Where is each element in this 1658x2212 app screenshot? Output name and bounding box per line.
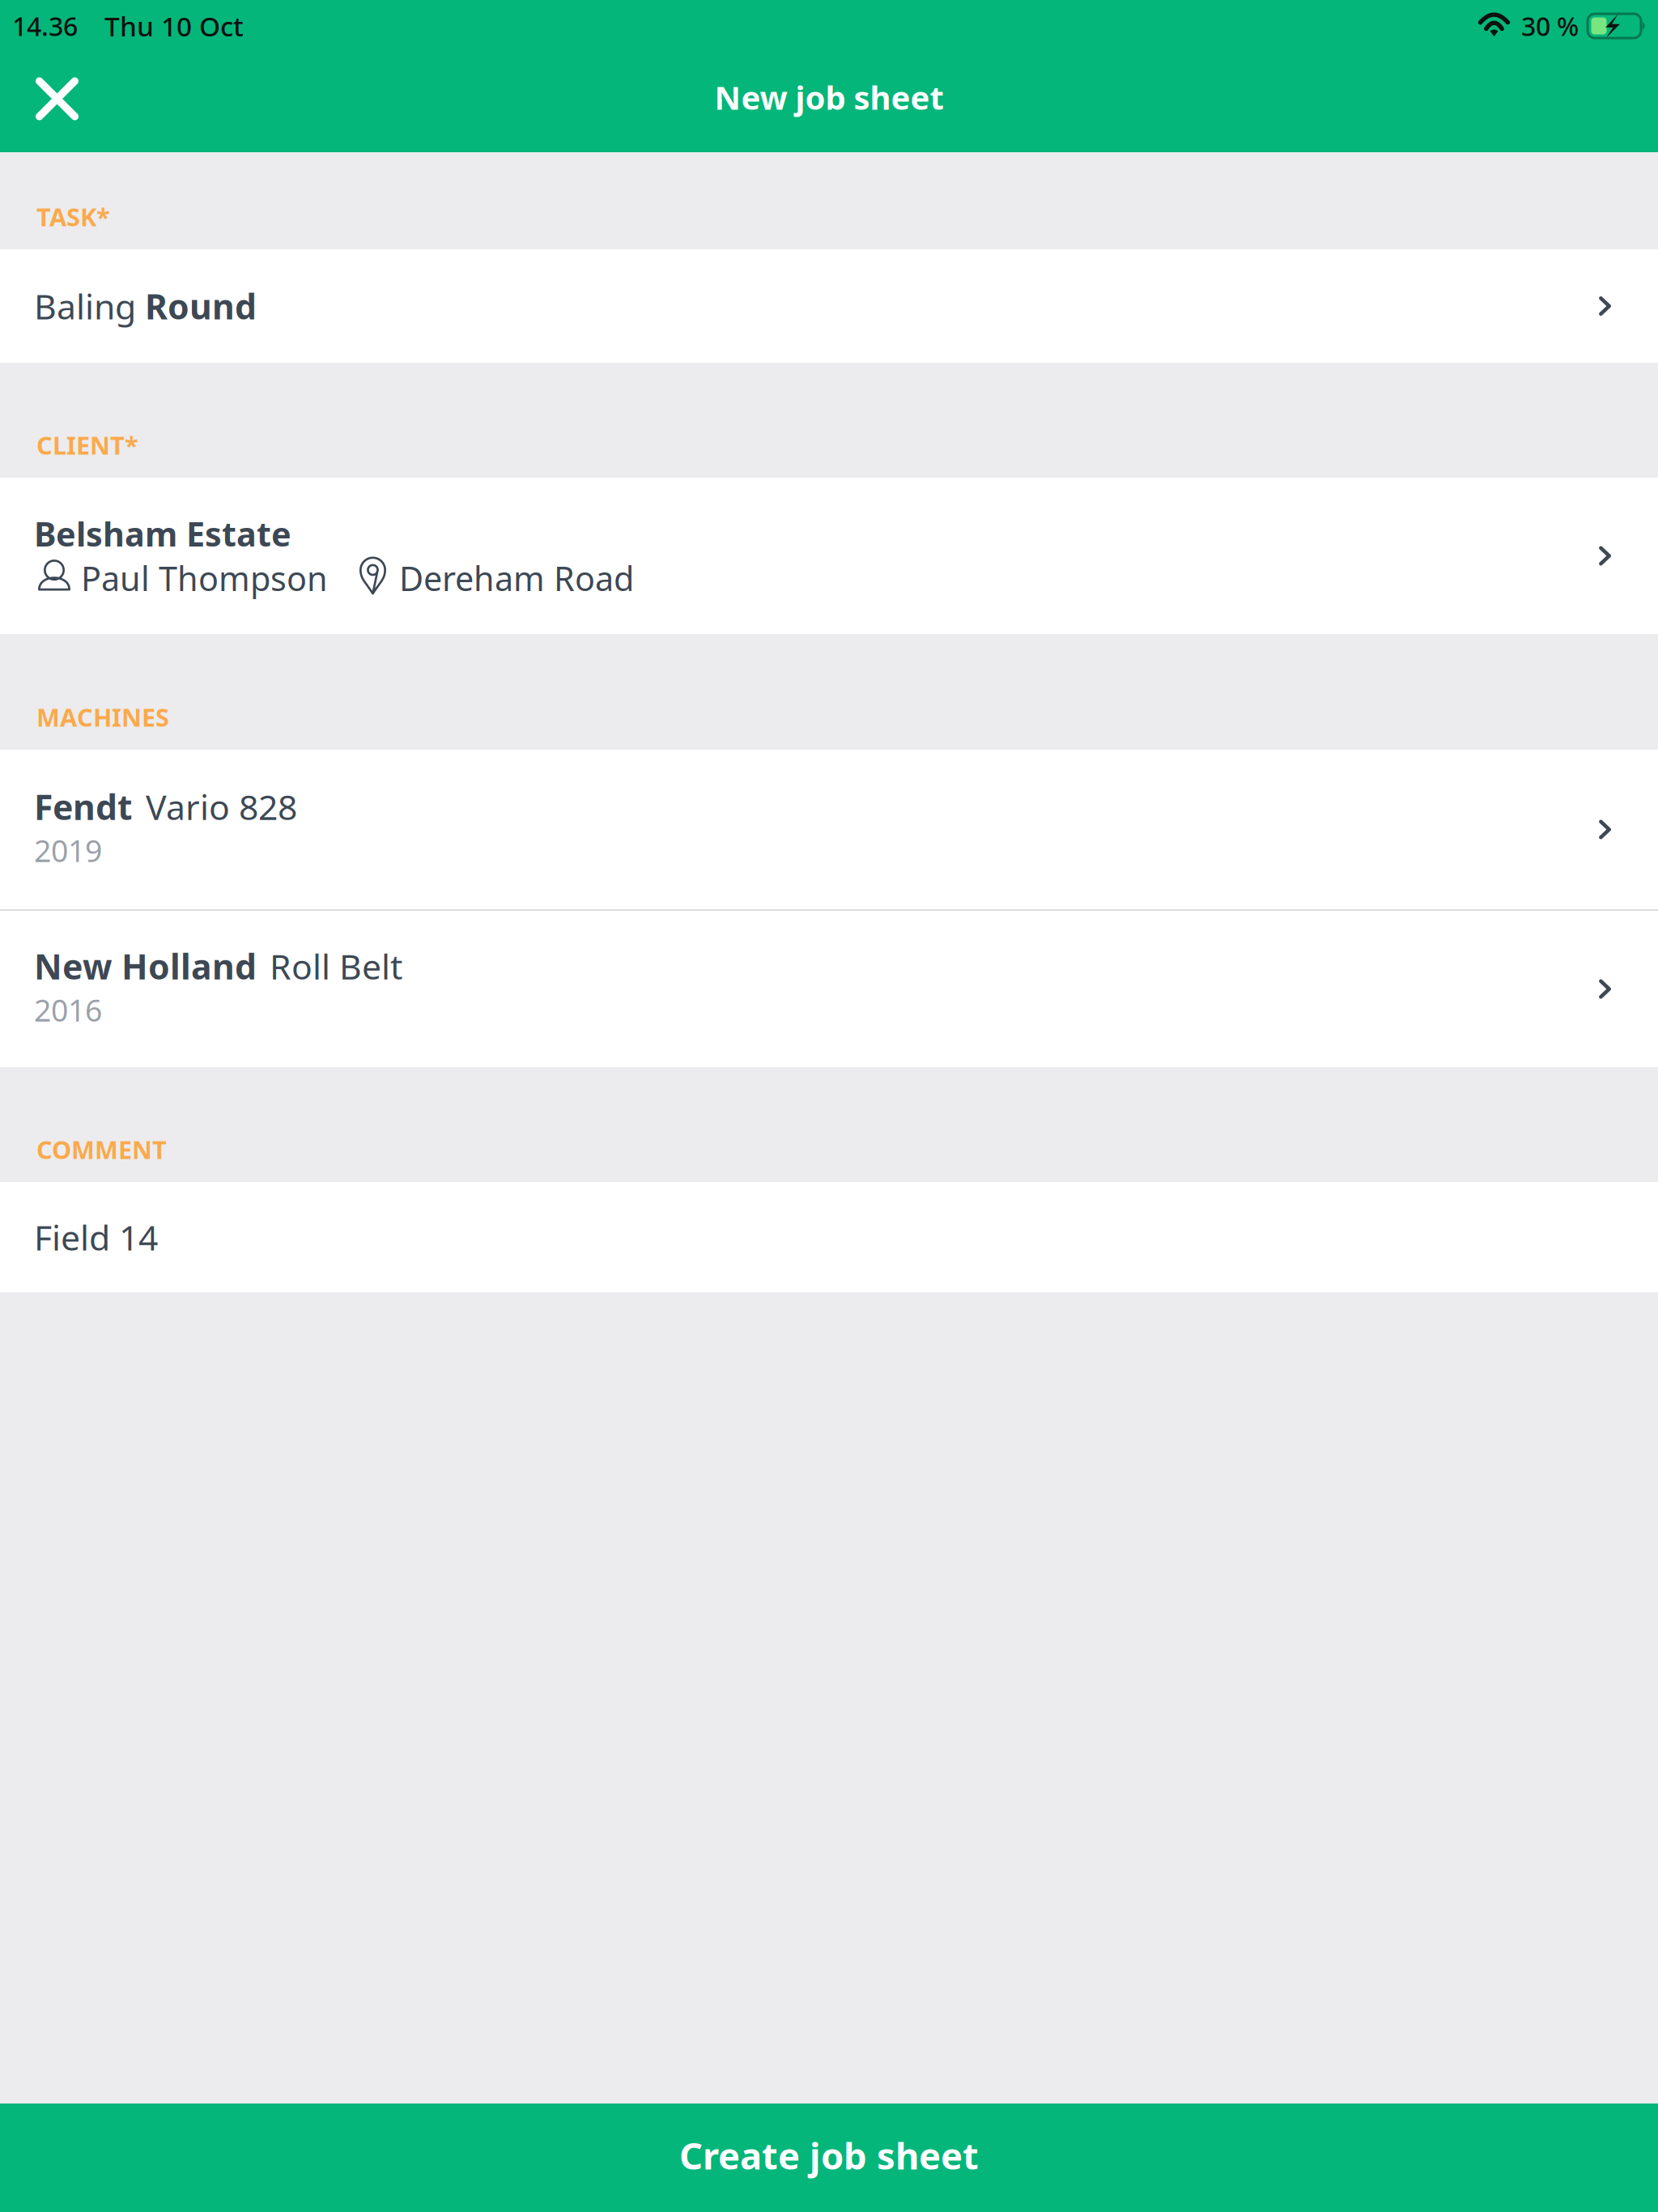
staticText: 30 % bbox=[1521, 9, 1579, 43]
staticText: Dereham Road bbox=[399, 556, 634, 600]
staticText: MACHINES bbox=[36, 701, 169, 734]
staticText: New Holland bbox=[34, 943, 257, 989]
button[interactable]: Belsham Estate bbox=[0, 478, 1658, 634]
button[interactable]: Close bbox=[0, 60, 103, 145]
staticText: 14.36 bbox=[12, 9, 78, 43]
staticText: COMMENT bbox=[36, 1133, 167, 1166]
button[interactable]: New Holland bbox=[0, 911, 1658, 1067]
staticText: Roll Belt bbox=[270, 943, 402, 989]
staticText: Field 14 bbox=[34, 1214, 158, 1260]
staticText: Belsham Estate bbox=[34, 511, 291, 556]
button[interactable]: Baling bbox=[0, 249, 1658, 363]
staticText: CLIENT* bbox=[36, 429, 138, 462]
button[interactable]: Fendt bbox=[0, 750, 1658, 909]
button[interactable]: Create job sheet bbox=[0, 2104, 1658, 2212]
staticText: Round bbox=[145, 283, 257, 329]
staticText: Vario 828 bbox=[146, 784, 297, 830]
button[interactable]: Field 14 bbox=[0, 1182, 1658, 1292]
staticText: 2019 bbox=[34, 830, 102, 870]
staticText: Create job sheet bbox=[679, 2131, 979, 2180]
staticText: New job sheet bbox=[714, 76, 944, 119]
staticText: 2016 bbox=[34, 990, 102, 1030]
staticText: Paul Thompson bbox=[81, 556, 328, 600]
staticText: Baling bbox=[34, 283, 145, 329]
staticText: Thu 10 Oct bbox=[104, 8, 244, 44]
staticText: Fendt bbox=[34, 784, 133, 830]
staticText: TASK* bbox=[36, 200, 110, 233]
